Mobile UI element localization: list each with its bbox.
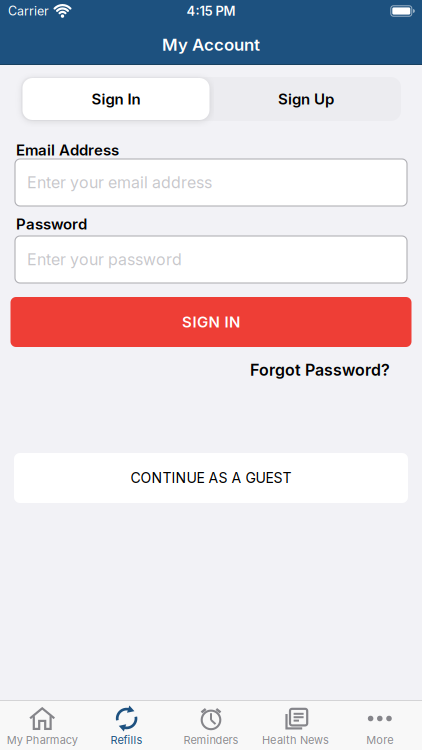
staticText: Refills — [111, 733, 143, 746]
staticText: CONTINUE AS A GUEST — [130, 470, 291, 486]
button[interactable]: Health News — [253, 701, 338, 749]
button[interactable]: CONTINUE AS A GUEST — [14, 453, 408, 503]
staticText: Enter your password — [27, 250, 182, 269]
button[interactable]: Refills — [84, 701, 169, 749]
staticText: My Pharmacy — [7, 733, 78, 746]
staticText: SIGN IN — [182, 313, 240, 331]
button[interactable]: More — [338, 701, 422, 749]
button[interactable]: SIGN IN — [10, 297, 411, 347]
staticText: More — [366, 733, 393, 746]
staticText: Email Address — [16, 141, 119, 159]
textField[interactable]: Enter your password — [15, 249, 407, 270]
staticText: Enter your email address — [15, 172, 211, 193]
button[interactable]: Sign In — [21, 77, 211, 121]
textField[interactable]: Enter your email address — [15, 172, 407, 193]
staticText: Forgot Password? — [250, 361, 390, 379]
staticText: Carrier — [8, 3, 49, 18]
staticText: Enter your email address — [27, 173, 212, 192]
staticText: Enter your password — [15, 249, 177, 270]
button[interactable]: My Pharmacy — [0, 701, 84, 749]
button[interactable]: Forgot Password? — [250, 363, 390, 381]
staticText: Sign In — [91, 90, 140, 108]
staticText: Health News — [262, 733, 329, 746]
button[interactable]: Sign Up — [211, 77, 401, 121]
staticText: 4:15 PM — [186, 3, 235, 19]
button[interactable]: Reminders — [169, 701, 253, 749]
staticText: Reminders — [183, 733, 238, 746]
staticText: My Account — [162, 34, 260, 55]
staticText: Password — [16, 215, 87, 233]
staticText: Sign Up — [278, 90, 334, 108]
